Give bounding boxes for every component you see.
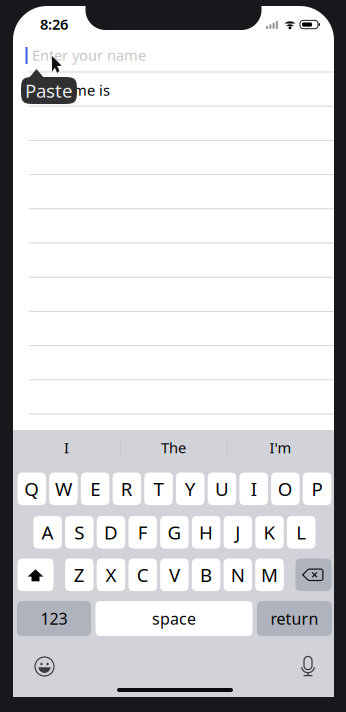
staticText: V xyxy=(169,562,180,587)
button[interactable]: Z xyxy=(65,558,93,591)
staticText: T xyxy=(154,476,164,501)
button[interactable]: V xyxy=(160,558,189,591)
staticText: return xyxy=(270,608,318,629)
staticText: R xyxy=(121,476,133,501)
button[interactable]: Q xyxy=(17,472,46,505)
staticText: P xyxy=(312,476,323,501)
staticText: space xyxy=(152,608,196,629)
button[interactable]: S xyxy=(65,516,93,549)
staticText: C xyxy=(137,562,149,587)
button[interactable]: H xyxy=(192,516,220,549)
staticText: B xyxy=(200,562,212,587)
button[interactable]: L xyxy=(287,516,315,549)
button[interactable]: Dictate xyxy=(300,656,316,678)
staticText: K xyxy=(263,520,275,545)
button[interactable]: T xyxy=(144,472,173,505)
staticText: I xyxy=(64,438,69,457)
staticText: N xyxy=(231,562,245,587)
button[interactable]: 123 xyxy=(17,601,91,636)
button[interactable]: Shift xyxy=(17,558,53,591)
button[interactable]: P xyxy=(303,472,331,505)
button[interactable]: D xyxy=(97,516,125,549)
staticText: E xyxy=(90,476,100,501)
button[interactable]: J xyxy=(223,516,252,549)
staticText: X xyxy=(105,562,116,587)
button[interactable]: I xyxy=(239,472,268,505)
button[interactable]: Emoji keyboard xyxy=(35,657,54,676)
staticText: A xyxy=(42,520,54,545)
button[interactable]: Delete xyxy=(295,558,331,591)
staticText: 123 xyxy=(40,608,67,629)
staticText: L xyxy=(296,520,306,545)
staticText: Enter your name xyxy=(32,45,146,65)
staticText: Q xyxy=(24,476,39,501)
button[interactable]: K xyxy=(255,516,284,549)
staticText: D xyxy=(104,520,118,545)
staticText: W xyxy=(55,476,72,501)
button[interactable]: F xyxy=(128,516,157,549)
staticText: Paste xyxy=(25,78,73,103)
button[interactable]: Paste xyxy=(21,77,77,104)
button[interactable]: M xyxy=(255,558,284,591)
button[interactable]: Y xyxy=(176,472,204,505)
button[interactable]: O xyxy=(271,472,300,505)
staticText: H xyxy=(199,520,213,545)
button[interactable]: return xyxy=(257,601,332,636)
staticText: M xyxy=(261,562,278,587)
button[interactable]: N xyxy=(224,558,252,591)
button[interactable]: I xyxy=(13,434,120,461)
button[interactable]: C xyxy=(128,558,157,591)
button[interactable]: R xyxy=(113,472,141,505)
button[interactable]: W xyxy=(49,472,78,505)
button[interactable]: G xyxy=(160,516,189,549)
staticText: My name is xyxy=(32,80,110,100)
button[interactable]: I'm xyxy=(227,434,334,461)
staticText: Z xyxy=(74,562,85,587)
button[interactable]: X xyxy=(97,558,125,591)
staticText: I xyxy=(251,476,257,501)
staticText: I'm xyxy=(269,438,291,457)
button[interactable]: B xyxy=(192,558,220,591)
button[interactable]: E xyxy=(81,472,109,505)
staticText: U xyxy=(215,476,229,501)
button[interactable]: U xyxy=(208,472,236,505)
button[interactable]: The xyxy=(120,434,227,461)
staticText: G xyxy=(167,520,181,545)
staticText: J xyxy=(235,520,240,545)
staticText: Y xyxy=(185,476,196,501)
staticText: The xyxy=(161,438,186,457)
staticText: S xyxy=(74,520,84,545)
button[interactable]: space xyxy=(95,601,252,636)
staticText: O xyxy=(278,476,293,501)
staticText: 8:26 xyxy=(40,14,68,34)
button[interactable]: A xyxy=(33,516,62,549)
staticText: F xyxy=(138,520,148,545)
